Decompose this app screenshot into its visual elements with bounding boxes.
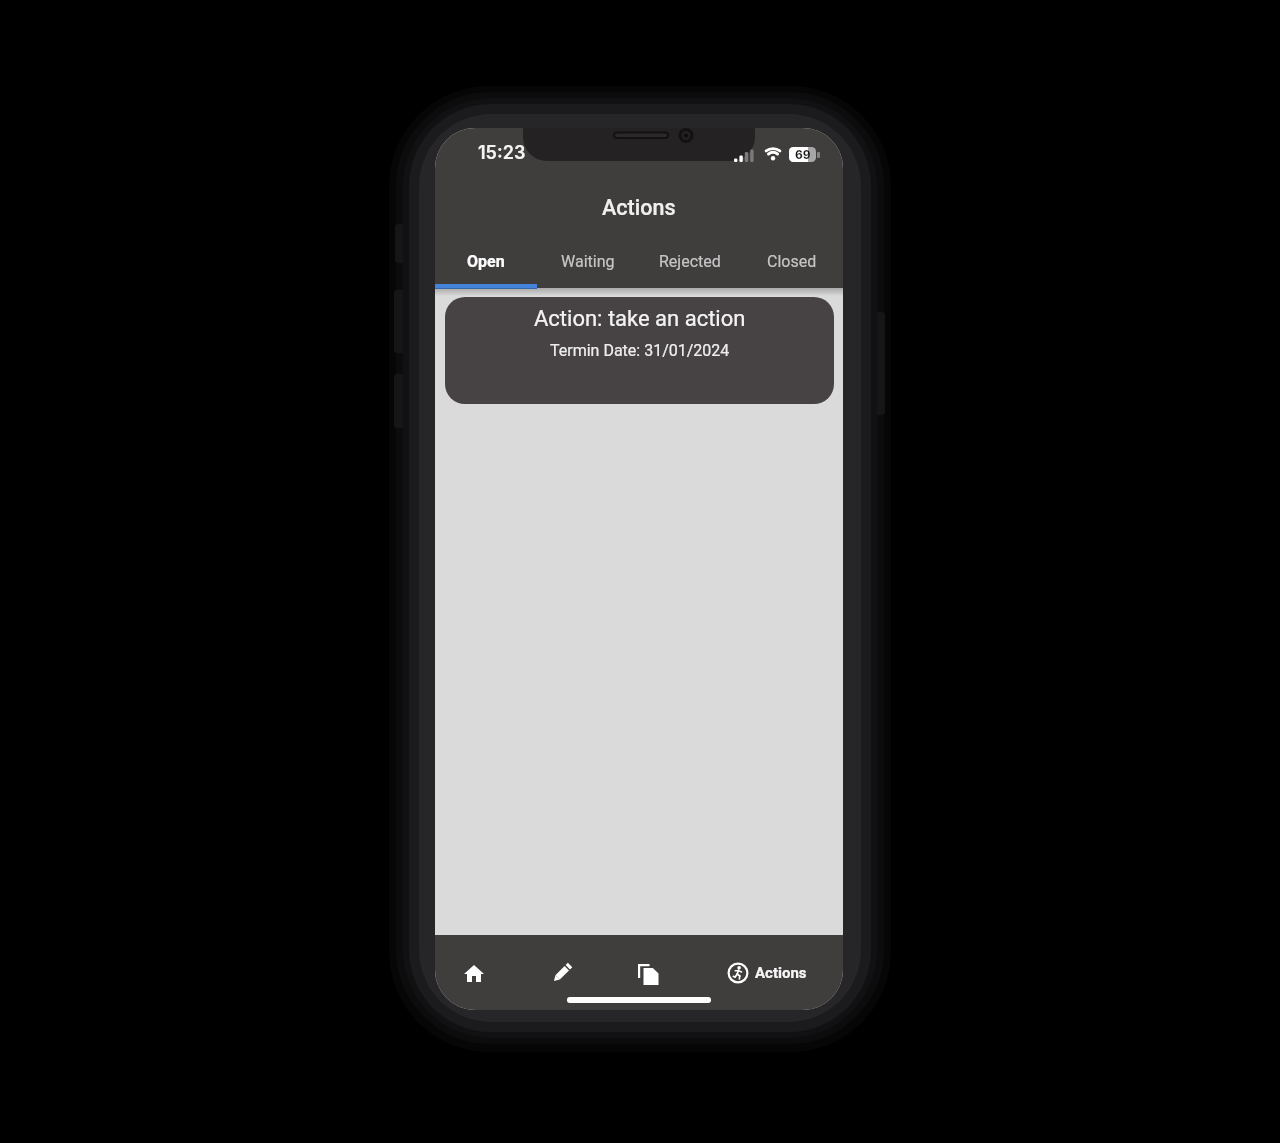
button[interactable]: Rejected: [639, 234, 741, 288]
button[interactable]: [628, 953, 668, 993]
staticText: Rejected: [659, 252, 721, 271]
staticText: Actions: [602, 195, 676, 220]
button[interactable]: Actions: [718, 953, 823, 993]
button[interactable]: Open: [435, 234, 537, 288]
staticText: Closed: [767, 252, 817, 271]
button[interactable]: [454, 953, 494, 993]
staticText: 15:23: [478, 142, 526, 164]
button[interactable]: Closed: [741, 234, 843, 288]
button[interactable]: Waiting: [537, 234, 639, 288]
staticText: Action: take an action: [534, 306, 746, 332]
staticText: 69: [795, 147, 811, 162]
button[interactable]: [542, 953, 582, 993]
staticText: Waiting: [561, 252, 615, 271]
button[interactable]: Action: take an action: [445, 297, 834, 404]
staticText: Termin Date: 31/01/2024: [550, 341, 730, 360]
staticText: Open: [467, 252, 505, 271]
staticText: Actions: [755, 964, 807, 982]
